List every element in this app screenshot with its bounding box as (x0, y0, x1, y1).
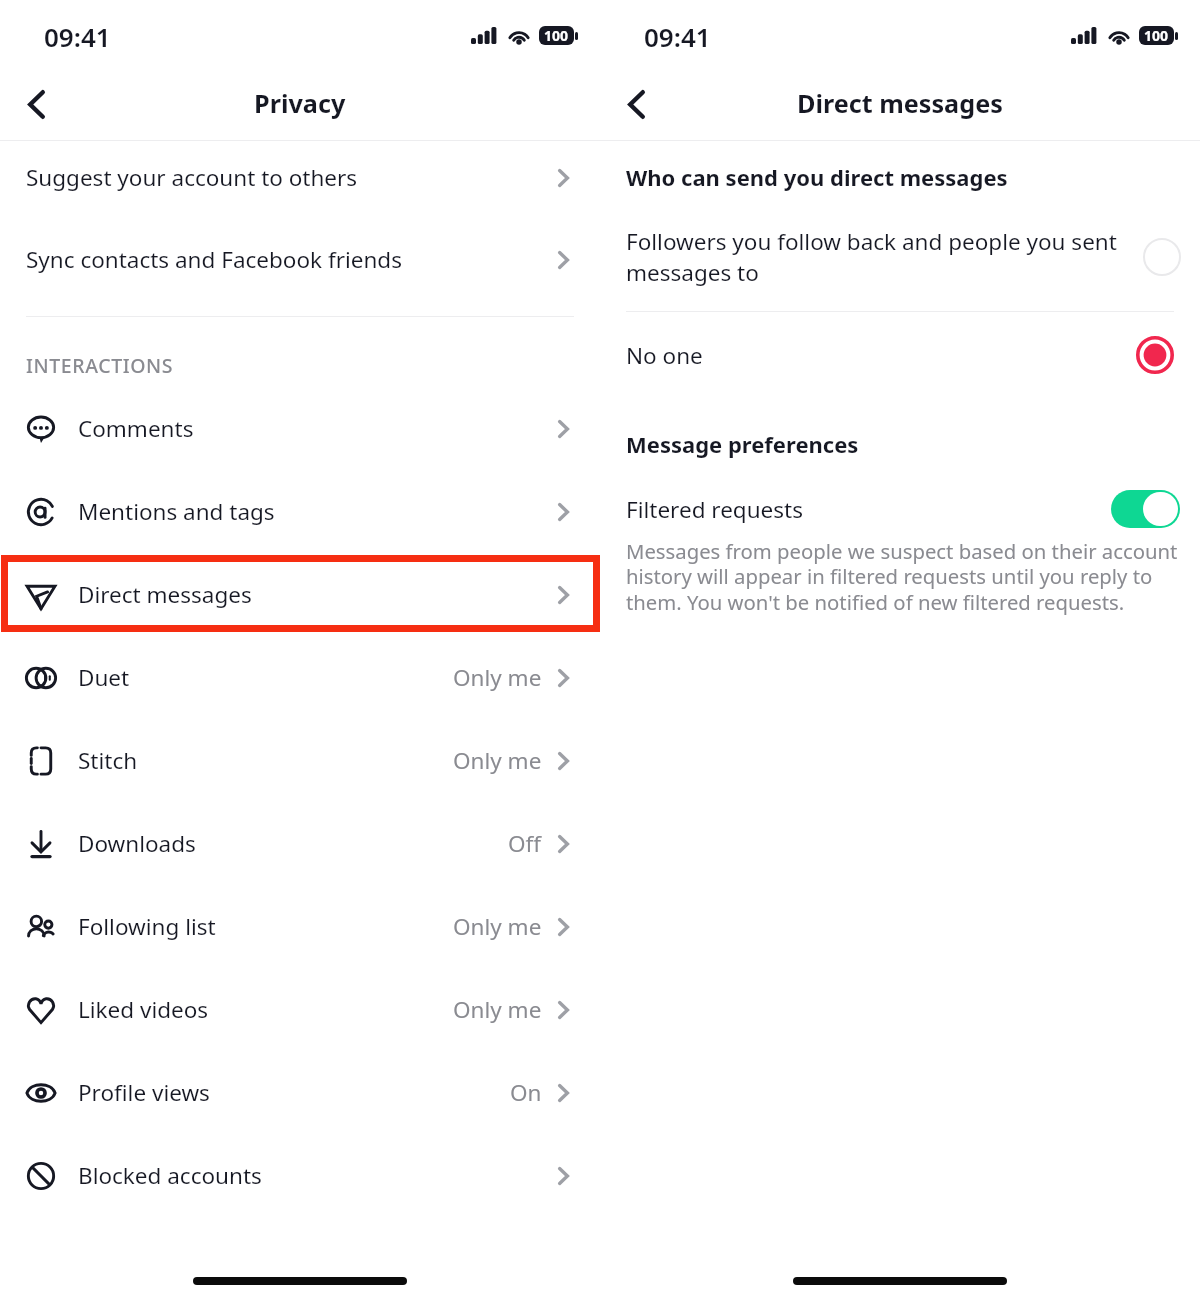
staticText: 09:41 (44, 19, 111, 54)
staticText: Followers you follow back and people you… (626, 226, 1130, 288)
button[interactable]: Toggle filtered requests (1111, 490, 1180, 528)
button[interactable]: Profile views (0, 1051, 600, 1134)
button[interactable]: Mentions and tags (0, 470, 600, 553)
staticText: Off (508, 828, 542, 859)
staticText: Filtered requests (626, 494, 1111, 525)
staticText: 100 (1144, 26, 1169, 45)
staticText: Stitch (78, 745, 138, 776)
button[interactable]: Select no one (1136, 336, 1174, 374)
button[interactable]: Select followers you follow back (1143, 238, 1181, 276)
staticText: Duet (78, 662, 130, 693)
button[interactable]: Liked videos (0, 968, 600, 1051)
staticText: Only me (453, 911, 542, 942)
button[interactable]: Sync contacts and Facebook friends (0, 223, 600, 305)
staticText: Mentions and tags (78, 496, 275, 527)
staticText: Who can send you direct messages (626, 162, 1008, 192)
button[interactable]: Duet (0, 636, 600, 719)
button[interactable]: Filtered requests (600, 490, 1200, 528)
button[interactable]: Following list (0, 885, 600, 968)
staticText: Direct messages (797, 86, 1003, 120)
staticText: INTERACTIONS (26, 352, 174, 379)
button[interactable]: Direct messages (0, 553, 600, 636)
staticText: Liked videos (78, 994, 209, 1025)
staticText: Blocked accounts (78, 1160, 262, 1191)
button[interactable]: Stitch (0, 719, 600, 802)
staticText: 100 (544, 26, 569, 45)
button[interactable]: Downloads (0, 802, 600, 885)
staticText: Message preferences (626, 429, 859, 459)
staticText: No one (626, 340, 1136, 371)
staticText: Sync contacts and Facebook friends (26, 244, 402, 275)
staticText: On (510, 1077, 542, 1108)
staticText: Suggest your account to others (26, 162, 358, 193)
staticText: Downloads (78, 828, 196, 859)
staticText: Privacy (254, 86, 346, 120)
staticText: Messages from people we suspect based on… (626, 537, 1188, 616)
button[interactable]: Blocked accounts (0, 1134, 600, 1217)
staticText: Only me (453, 745, 542, 776)
staticText: Following list (78, 911, 216, 942)
button[interactable]: Followers you follow back and people you… (600, 213, 1200, 311)
button[interactable]: Comments (0, 387, 600, 470)
staticText: 09:41 (644, 19, 711, 54)
button[interactable]: Suggest your account to others (0, 141, 600, 223)
staticText: Direct messages (78, 579, 252, 610)
button[interactable]: No one (600, 312, 1200, 398)
staticText: Profile views (78, 1077, 210, 1108)
staticText: Only me (453, 662, 542, 693)
staticText: Comments (78, 413, 194, 444)
staticText: Only me (453, 994, 542, 1025)
button[interactable]: Back (8, 76, 64, 132)
button[interactable]: Back (608, 76, 664, 132)
